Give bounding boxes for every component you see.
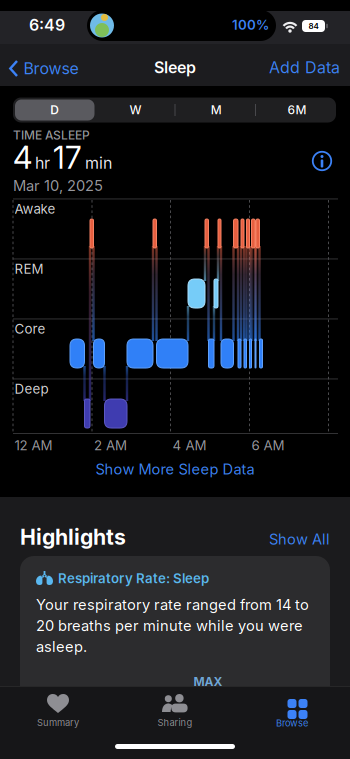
button[interactable]: Sharing (117, 689, 233, 733)
staticText: Respiratory Rate: Sleep (58, 570, 209, 586)
button[interactable]: Browse (234, 689, 350, 733)
staticText: min (85, 153, 112, 172)
staticText: Mar 10, 2025 (13, 177, 103, 194)
staticText: 4 AM (172, 437, 206, 453)
staticText: Sleep (154, 58, 196, 77)
staticText: Summary (37, 717, 79, 728)
staticText: REM (14, 261, 43, 277)
button[interactable]: Info (311, 150, 333, 172)
staticText: Browse (276, 717, 308, 728)
button[interactable]: W (95, 97, 175, 122)
staticText: 6:49 (29, 15, 65, 34)
staticText: MAX (193, 674, 222, 689)
staticText: Highlights (20, 524, 126, 550)
staticText: Awake (14, 201, 55, 217)
staticText: Deep (14, 381, 48, 397)
staticText: 12 AM (14, 437, 52, 453)
staticText: 100% (232, 17, 269, 33)
staticText: M (211, 103, 222, 117)
staticText: hr (35, 153, 50, 172)
button[interactable]: Respiratory Rate: Sleep (20, 556, 330, 759)
staticText: D (50, 103, 59, 117)
button[interactable]: 6M (257, 97, 337, 122)
button[interactable]: Show All (269, 530, 330, 548)
staticText: TIME ASLEEP (13, 128, 90, 142)
staticText: 6M (287, 103, 306, 117)
button[interactable]: M (176, 97, 256, 122)
staticText: Core (14, 321, 45, 337)
button[interactable]: Summary (0, 689, 116, 733)
staticText: Show More Sleep Data (95, 460, 254, 478)
button[interactable]: Show More Sleep Data (95, 460, 254, 478)
staticText: 17 (53, 139, 82, 176)
staticText: 84 (308, 21, 318, 31)
staticText: W (129, 103, 141, 117)
staticText: 6 AM (251, 437, 284, 453)
staticText: Browse (23, 59, 78, 78)
staticText: Show All (269, 530, 330, 548)
button[interactable]: Add Data (269, 58, 340, 77)
staticText: asleep. (36, 638, 87, 655)
button[interactable]: Browse (9, 56, 78, 80)
button[interactable]: D (15, 97, 95, 122)
staticText: Sharing (157, 717, 192, 728)
staticText: Your respiratory rate ranged from 14 to (36, 596, 309, 613)
staticText: 2 AM (94, 437, 127, 453)
staticText: 4 (13, 139, 32, 176)
staticText: Add Data (269, 58, 340, 77)
staticText: 20 breaths per minute while you were (36, 617, 303, 634)
